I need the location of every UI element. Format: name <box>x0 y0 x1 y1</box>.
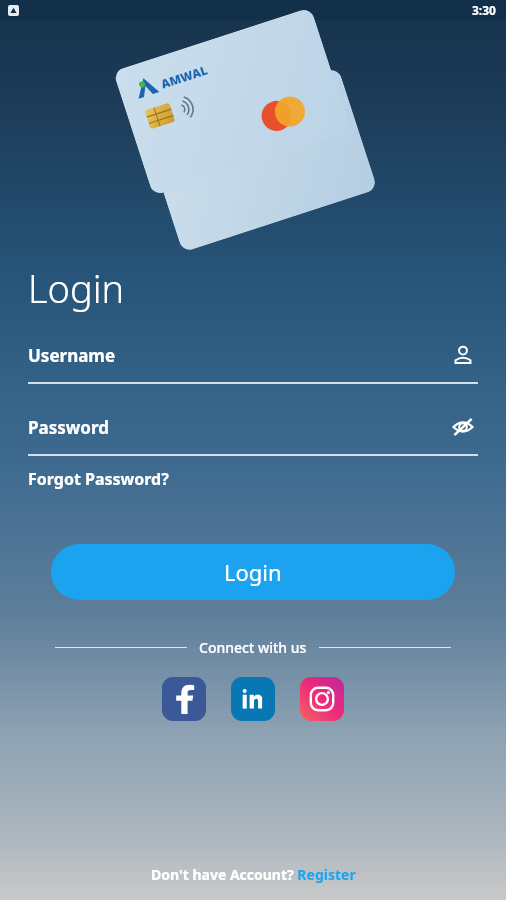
staticText: Password <box>28 416 109 439</box>
button[interactable]: Username <box>0 340 506 384</box>
staticText: Username <box>28 344 116 367</box>
button[interactable]: Facebook <box>162 677 206 721</box>
staticText: AMWAL <box>159 61 210 92</box>
button[interactable]: LinkedIn <box>231 677 275 721</box>
staticText: Login <box>28 262 125 314</box>
button[interactable]: Login <box>51 544 455 600</box>
button[interactable]: Show password <box>448 412 478 442</box>
button[interactable]: Account <box>448 340 478 370</box>
button[interactable]: Don't have Account? Register <box>0 865 506 884</box>
button[interactable]: Password <box>0 412 506 456</box>
staticText: Forgot Password? <box>28 468 169 490</box>
button[interactable]: Forgot Password? <box>28 466 169 492</box>
staticText: 3:30 <box>472 2 496 18</box>
staticText: Login <box>224 557 282 587</box>
button[interactable]: Instagram <box>300 677 344 721</box>
staticText: Connect with us <box>199 638 307 657</box>
staticText: Don't have Account? Register <box>151 865 356 884</box>
